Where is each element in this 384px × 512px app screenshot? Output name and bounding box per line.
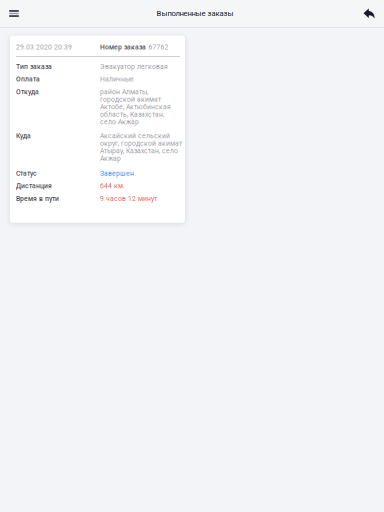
staticText: 29.03.2020 20:39 [16, 43, 72, 51]
staticText: Выполненные заказы [156, 9, 233, 18]
staticText: Оплата [16, 75, 40, 83]
staticText: Завершен [100, 170, 134, 177]
staticText: Номер заказа [100, 43, 146, 51]
staticText: Тип заказа [16, 63, 52, 70]
button[interactable]: Menu [0, 0, 28, 26]
staticText: 9 часов 12 минут [100, 195, 157, 202]
staticText: Эвакуатор легковая [100, 63, 168, 70]
staticText: 67762 [148, 43, 168, 51]
staticText: Аксайский сельский округ, городской аким… [100, 132, 182, 162]
staticText: Наличные [100, 75, 134, 83]
staticText: 644 км. [100, 182, 125, 190]
button[interactable]: Back [354, 0, 384, 26]
staticText: Статус [16, 170, 37, 177]
staticText: Куда [16, 132, 31, 140]
staticText: Дистанция [16, 182, 52, 190]
staticText: Время в пути [16, 195, 59, 202]
staticText: район Алматы, городской акимат Актобе, А… [100, 88, 171, 126]
staticText: Откуда [16, 88, 39, 96]
